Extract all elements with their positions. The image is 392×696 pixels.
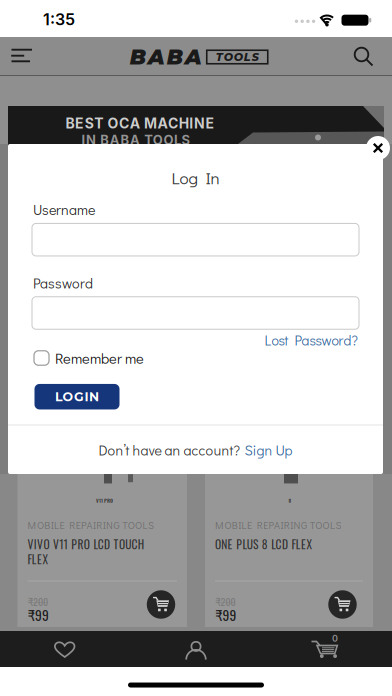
staticText: B A B A [130, 44, 202, 70]
staticText: ₹99 [28, 605, 49, 625]
staticText: Don’t have an account? [98, 441, 240, 459]
staticText: FLEX [27, 550, 48, 567]
staticText: LOGIN [55, 389, 99, 404]
staticText: MOBILE REPAIRING TOOLS [215, 518, 341, 532]
staticText: 8 [288, 497, 291, 504]
staticText: MOBILE REPAIRING TOOLS [27, 518, 154, 532]
button[interactable]: Account [184, 637, 208, 661]
staticText: 1:35 [43, 10, 75, 29]
staticText: Username [33, 200, 95, 219]
button[interactable]: Password [32, 297, 359, 329]
staticText: Log In [171, 166, 219, 189]
button[interactable]: Cart [309, 634, 339, 662]
staticText: BEST OCA MACHINE [65, 115, 214, 132]
button[interactable]: Remember me [34, 348, 144, 367]
staticText: ₹200 [28, 594, 48, 609]
staticText: T O O L S [216, 50, 259, 64]
button[interactable]: Menu [1, 35, 41, 75]
staticText: Lost Password? [264, 331, 357, 349]
staticText: ONE PLUS 8 LCD FLEX [215, 535, 312, 552]
button[interactable]: Add to cart [328, 590, 357, 619]
staticText: Remember me [55, 348, 144, 367]
staticText: ₹99 [215, 605, 236, 625]
button[interactable]: Wishlist [53, 639, 77, 659]
button[interactable]: BABA Tools home [126, 47, 268, 67]
button[interactable]: Add to cart [147, 590, 175, 619]
staticText: Sign Up [244, 441, 292, 459]
button[interactable]: Search [342, 35, 382, 75]
staticText: 0 [332, 633, 338, 644]
staticText: ₹200 [215, 594, 235, 609]
staticText: VIVO V11 PRO LCD TOUCH [27, 535, 144, 552]
button[interactable]: Username [32, 223, 359, 256]
staticText: Password [33, 274, 93, 292]
button[interactable]: LOGIN [34, 384, 119, 409]
button[interactable]: Lost Password? [264, 331, 357, 349]
button[interactable]: Sign Up [244, 441, 292, 459]
staticText: V11 PRO [96, 497, 113, 504]
button[interactable]: Close [366, 136, 390, 160]
staticText: IN BABA TOOLS [81, 132, 191, 148]
